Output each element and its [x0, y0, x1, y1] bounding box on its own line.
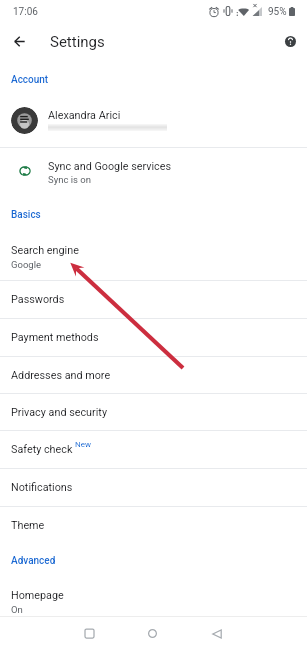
button[interactable]: Safety check [0, 431, 307, 468]
staticText: Addresses and more [11, 369, 111, 382]
button[interactable]: Alexandra Arici [0, 92, 307, 148]
button[interactable]: Privacy and security [0, 394, 307, 430]
staticText: Basics [11, 209, 41, 221]
button[interactable]: Passwords [0, 281, 307, 318]
button[interactable]: Home [135, 617, 170, 650]
staticText: Notifications [11, 481, 73, 494]
button[interactable]: Search engine [0, 232, 307, 280]
button[interactable]: Payment methods [0, 319, 307, 356]
button[interactable]: Recent apps [72, 617, 107, 650]
button[interactable]: Sync and Google services [0, 148, 307, 196]
button[interactable]: Back [199, 617, 234, 650]
staticText: New [75, 440, 91, 449]
staticText: Account [11, 74, 49, 86]
staticText: Advanced [11, 555, 56, 567]
staticText: Passwords [11, 293, 65, 306]
button[interactable]: Navigate up [7, 29, 32, 54]
staticText: 17:06 [13, 6, 38, 18]
staticText: Safety check [11, 443, 73, 456]
staticText: On [11, 604, 23, 615]
staticText: Privacy and security [11, 406, 107, 419]
button[interactable]: Help and feedback [279, 30, 302, 53]
staticText: Sync is on [48, 174, 91, 185]
staticText: Payment methods [11, 331, 99, 344]
button[interactable]: Notifications [0, 469, 307, 506]
staticText: Search engine [11, 244, 79, 257]
staticText: Google [11, 259, 41, 270]
staticText: Sync and Google services [48, 160, 172, 173]
staticText: Settings [50, 33, 105, 51]
button[interactable]: Homepage [0, 578, 307, 626]
button[interactable]: Theme [0, 507, 307, 544]
staticText: Theme [11, 519, 45, 532]
staticText: Homepage [11, 589, 64, 602]
staticText: Alexandra Arici [48, 109, 121, 122]
staticText: 95% [268, 6, 287, 18]
button[interactable]: Addresses and more [0, 357, 307, 393]
